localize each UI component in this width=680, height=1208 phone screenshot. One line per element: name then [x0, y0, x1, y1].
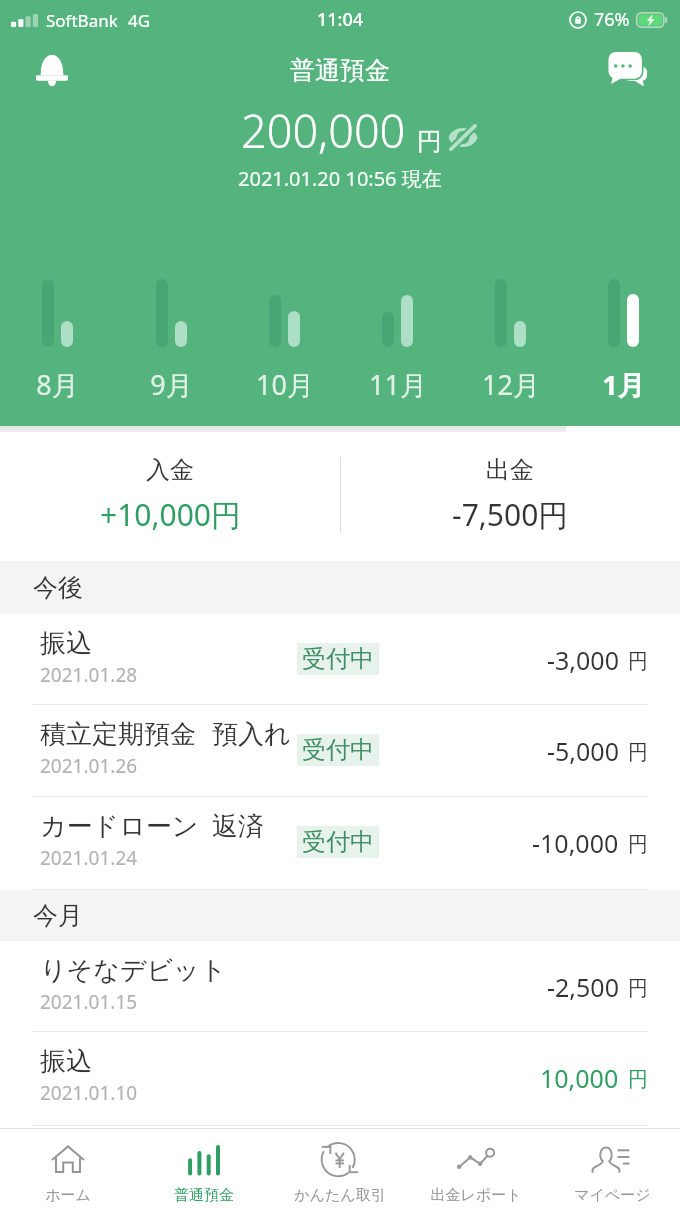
staticText: -2,500: [547, 970, 619, 1004]
staticText: -5,000: [547, 734, 619, 768]
staticText: 9月: [150, 366, 193, 403]
staticText: マイページ: [574, 1186, 651, 1205]
staticText: +10,000円: [100, 494, 241, 535]
staticText: 2021.01.26: [40, 753, 138, 779]
staticText: 2021.01.20 10:56 現在: [238, 165, 442, 192]
staticText: 12月: [482, 366, 540, 403]
button[interactable]: 振込: [0, 1032, 680, 1126]
button[interactable]: 出金レポート: [408, 1128, 544, 1208]
staticText: 11:04: [317, 7, 364, 32]
button[interactable]: かんたん取引: [272, 1128, 408, 1208]
staticText: 円: [628, 976, 648, 1001]
staticText: -7,500円: [452, 494, 569, 535]
staticText: 積立定期預金: [40, 718, 196, 751]
staticText: カードローン: [40, 810, 199, 843]
staticText: 今後: [33, 572, 83, 603]
button[interactable]: りそなデビット: [0, 941, 680, 1032]
staticText: 円: [628, 740, 648, 765]
staticText: 4G: [128, 9, 151, 32]
button[interactable]: Hide balance: [442, 117, 484, 157]
staticText: SoftBank: [46, 9, 118, 32]
staticText: 受付中: [302, 827, 374, 857]
staticText: 出金: [486, 455, 534, 485]
staticText: 振込: [40, 1045, 92, 1078]
staticText: 2021.01.15: [40, 989, 138, 1015]
staticText: 返済: [212, 810, 264, 843]
staticText: 2021.01.28: [40, 662, 138, 688]
staticText: 円: [628, 832, 648, 857]
staticText: -10,000: [532, 826, 619, 860]
staticText: 76%: [594, 7, 630, 32]
button[interactable]: 積立定期預金: [0, 705, 680, 797]
staticText: 受付中: [302, 644, 374, 674]
staticText: 振込: [40, 627, 92, 660]
staticText: りそなデビット: [40, 954, 227, 987]
button[interactable]: Chat: [603, 46, 651, 94]
button[interactable]: 普通預金: [136, 1128, 272, 1208]
staticText: 1月: [602, 366, 645, 403]
staticText: 普通預金: [290, 55, 390, 86]
staticText: ホーム: [45, 1186, 91, 1205]
staticText: 円: [628, 1067, 648, 1092]
staticText: 預入れ: [212, 718, 291, 751]
staticText: 11月: [369, 366, 427, 403]
staticText: かんたん取引: [294, 1186, 386, 1205]
button[interactable]: マイページ: [544, 1128, 680, 1208]
staticText: 2021.01.10: [40, 1080, 138, 1106]
staticText: 10月: [256, 366, 314, 403]
staticText: 10,000: [540, 1061, 619, 1095]
staticText: 今月: [33, 900, 83, 931]
staticText: 普通預金: [174, 1186, 234, 1205]
staticText: 円: [417, 126, 442, 157]
button[interactable]: カードローン: [0, 797, 680, 890]
staticText: 円: [628, 649, 648, 674]
button[interactable]: 振込: [0, 614, 680, 705]
staticText: -3,000: [547, 643, 619, 677]
staticText: 8月: [36, 366, 79, 403]
staticText: 出金レポート: [430, 1186, 522, 1205]
staticText: 入金: [146, 455, 194, 485]
staticText: 2021.01.24: [40, 845, 138, 871]
button[interactable]: ホーム: [0, 1128, 136, 1208]
staticText: 受付中: [302, 735, 374, 765]
staticText: 200,000: [241, 100, 406, 161]
button[interactable]: Notifications: [26, 43, 78, 95]
